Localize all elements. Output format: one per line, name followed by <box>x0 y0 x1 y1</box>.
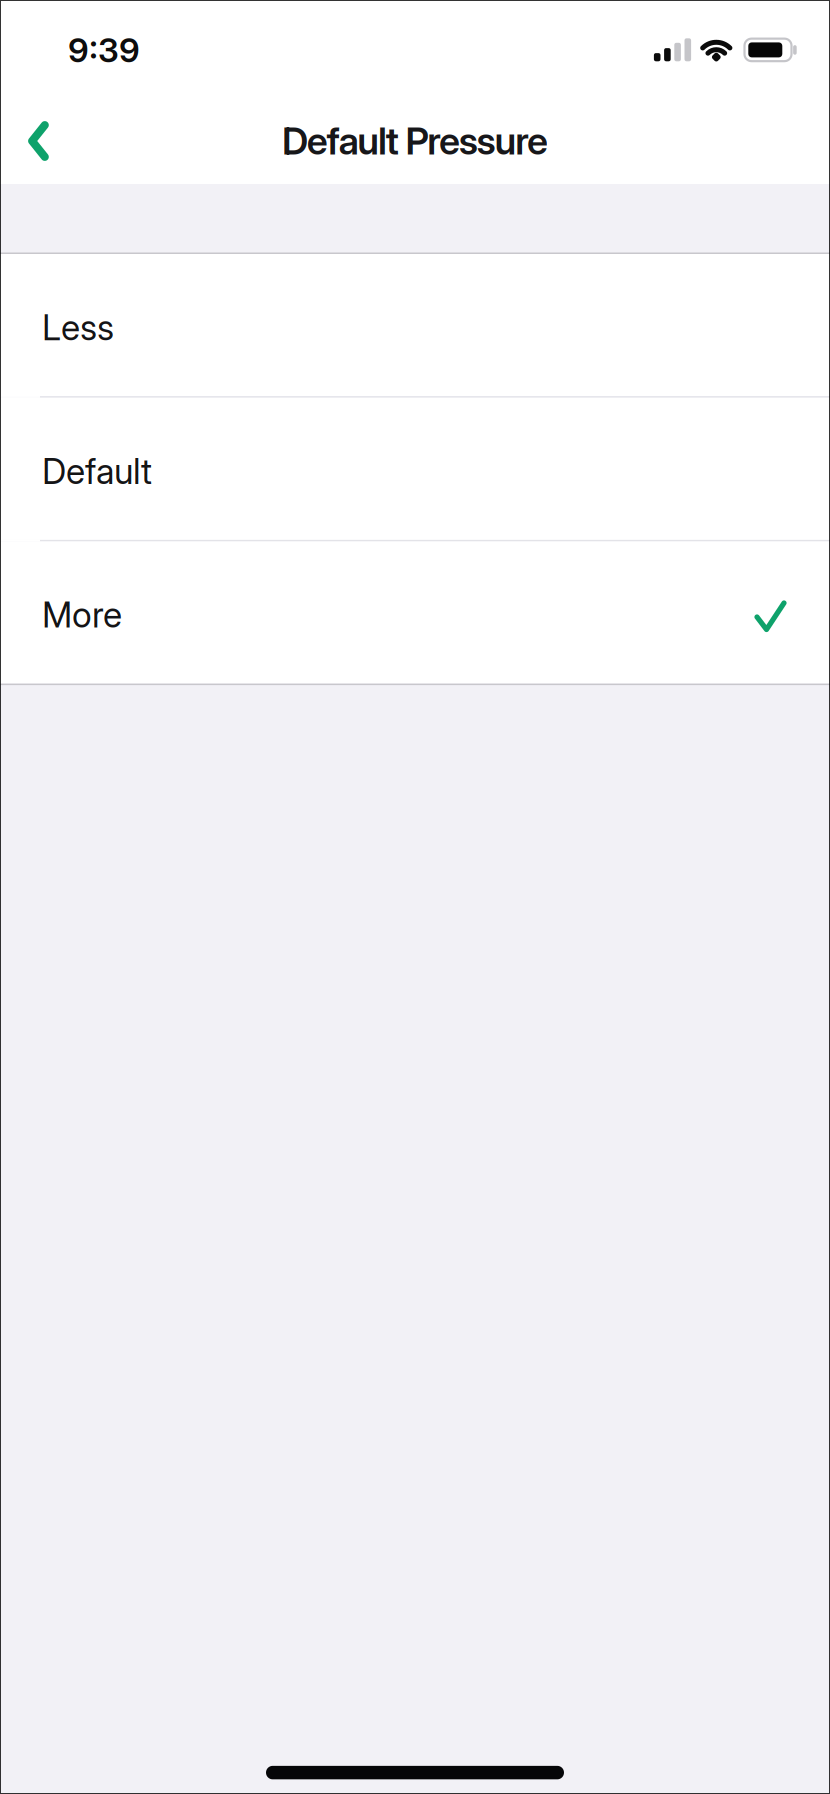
button[interactable]: Back <box>14 107 63 175</box>
button[interactable]: More <box>0 541 830 684</box>
staticText: More <box>42 595 122 635</box>
staticText: Default <box>42 451 152 492</box>
staticText: Less <box>42 307 114 348</box>
button[interactable]: Less <box>0 254 830 396</box>
button[interactable]: Default <box>0 398 830 540</box>
staticText: Default Pressure <box>282 119 548 163</box>
staticText: 9:39 <box>68 30 140 70</box>
